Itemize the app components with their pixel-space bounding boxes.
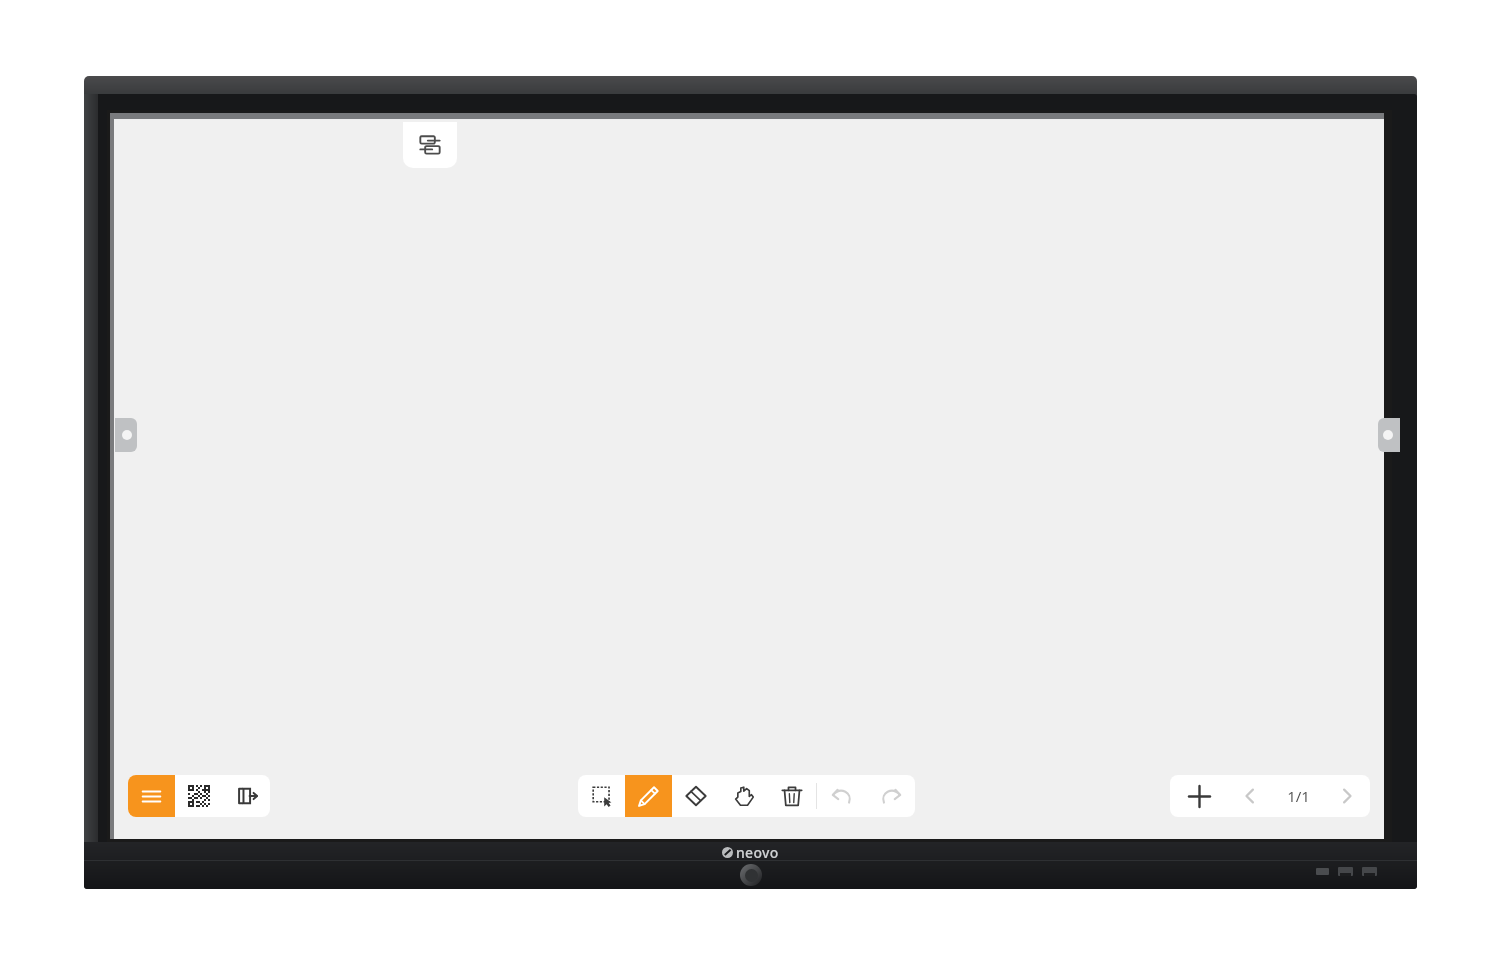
- button[interactable]: Add page: [1170, 775, 1228, 817]
- button[interactable]: Pan: [720, 775, 768, 817]
- button[interactable]: Menu: [128, 775, 175, 817]
- button[interactable]: Switch input: [403, 122, 457, 168]
- button[interactable]: Next page: [1324, 775, 1370, 817]
- button[interactable]: QR code: [175, 775, 223, 817]
- button[interactable]: Power: [740, 864, 762, 886]
- button[interactable]: Export: [223, 775, 270, 817]
- button[interactable]: Eraser: [672, 775, 720, 817]
- button[interactable]: Redo: [866, 775, 915, 817]
- staticText: neovo: [736, 843, 779, 862]
- button[interactable]: Pen: [625, 775, 672, 817]
- button[interactable]: Select: [578, 775, 625, 817]
- button[interactable]: Previous page: [1228, 775, 1272, 817]
- button[interactable]: 1/1: [1272, 775, 1324, 817]
- staticText: 1/1: [1287, 786, 1310, 806]
- button[interactable]: Undo: [817, 775, 866, 817]
- button[interactable]: Delete all: [768, 775, 816, 817]
